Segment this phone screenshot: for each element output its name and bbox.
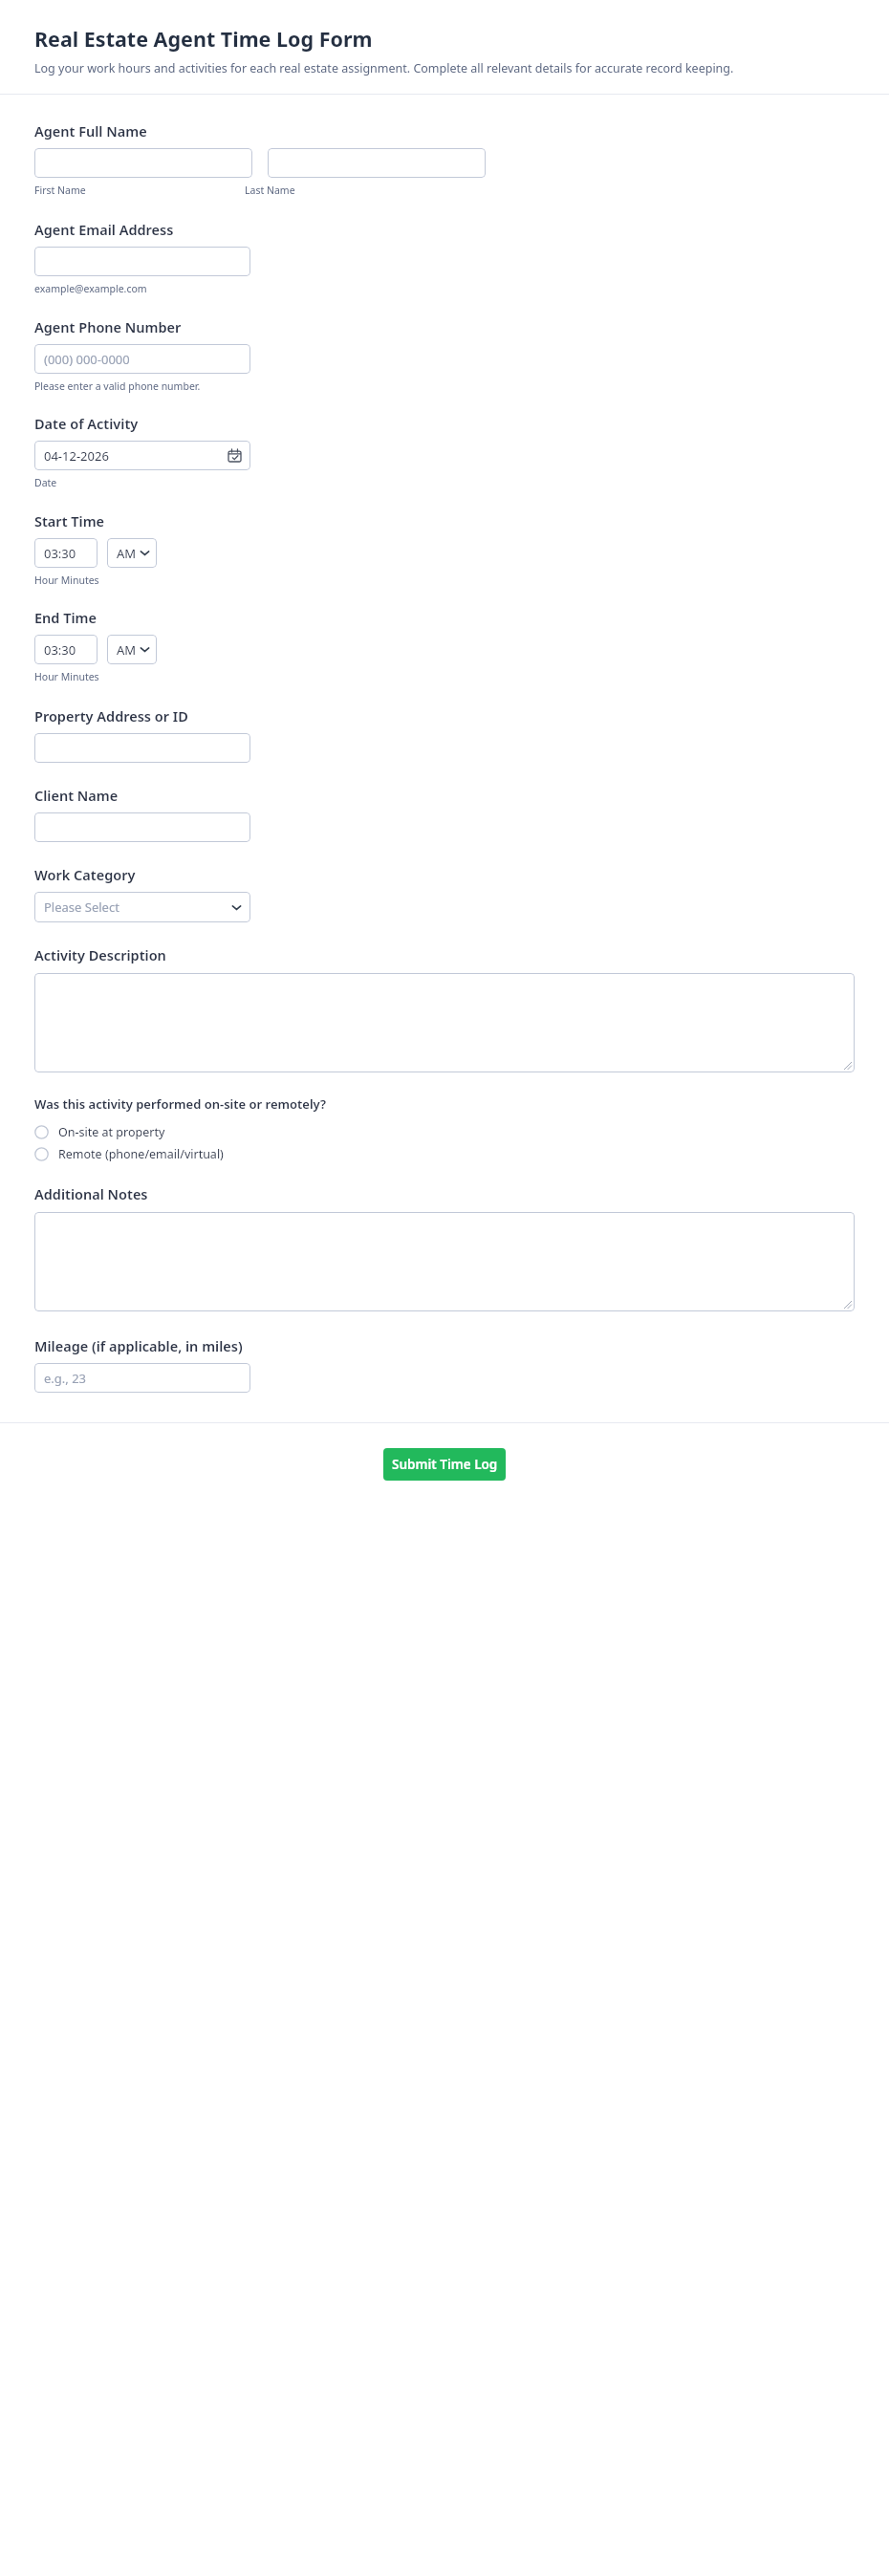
staticText: Mileage (if applicable, in miles) (34, 1336, 243, 1355)
button[interactable] (34, 247, 250, 276)
staticText: Property Address or ID (34, 706, 188, 725)
button[interactable]: AM (107, 635, 157, 664)
staticText: Last Name (245, 184, 295, 197)
button[interactable]: e.g., 23 (34, 1363, 250, 1393)
staticText: Agent Email Address (34, 220, 174, 239)
staticText: Remote (phone/email/virtual) (58, 1146, 224, 1162)
staticText: Date of Activity (34, 414, 139, 433)
staticText: Start Time (34, 511, 105, 530)
staticText: 04-12-2026 (44, 447, 109, 465)
staticText: First Name (34, 184, 86, 197)
staticText: 03:30 (44, 545, 76, 562)
staticText: Work Category (34, 865, 136, 884)
staticText: example@example.com (34, 282, 147, 295)
staticText: Was this activity performed on-site or r… (34, 1095, 326, 1113)
button[interactable]: (000) 000-0000 (34, 344, 250, 374)
staticText: On-site at property (58, 1124, 165, 1140)
button[interactable] (34, 733, 250, 763)
staticText: Additional Notes (34, 1184, 148, 1203)
staticText: AM (117, 545, 137, 562)
staticText: Hour Minutes (34, 670, 99, 683)
staticText: Submit Time Log (392, 1456, 498, 1473)
staticText: Agent Full Name (34, 121, 147, 141)
button[interactable]: 03:30 (34, 635, 98, 664)
staticText: Hour Minutes (34, 574, 99, 587)
button[interactable]: Submit Time Log (383, 1448, 506, 1481)
staticText: 03:30 (44, 641, 76, 659)
staticText: Client Name (34, 786, 119, 805)
button[interactable] (34, 1212, 855, 1311)
button[interactable]: Remote (phone/email/virtual) (34, 1143, 889, 1165)
staticText: Real Estate Agent Time Log Form (34, 25, 373, 53)
staticText: (000) 000-0000 (44, 351, 130, 368)
button[interactable] (34, 812, 250, 842)
staticText: Date (34, 476, 57, 489)
button[interactable]: On-site at property (34, 1121, 889, 1143)
staticText: Agent Phone Number (34, 317, 182, 336)
staticText: Please enter a valid phone number. (34, 379, 201, 393)
button[interactable]: AM (107, 538, 157, 568)
staticText: AM (117, 641, 137, 659)
staticText: End Time (34, 608, 97, 627)
button[interactable] (34, 973, 855, 1072)
staticText: Please Select (44, 898, 119, 916)
button[interactable] (34, 148, 252, 178)
button[interactable]: Please Select (34, 892, 250, 922)
button[interactable]: 04-12-2026 (34, 441, 250, 470)
staticText: Activity Description (34, 945, 166, 964)
staticText: e.g., 23 (44, 1370, 87, 1387)
button[interactable]: 03:30 (34, 538, 98, 568)
button[interactable] (268, 148, 486, 178)
staticText: Log your work hours and activities for e… (34, 60, 734, 76)
